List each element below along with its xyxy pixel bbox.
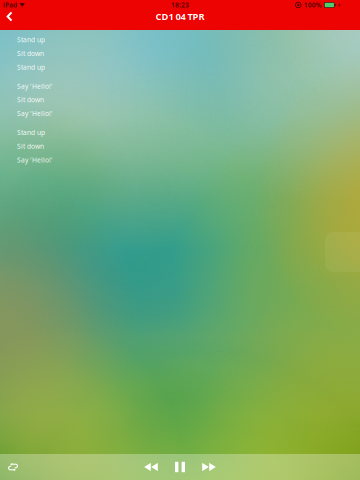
staticText: 100% bbox=[304, 1, 322, 9]
staticText: Say 'Hello!' bbox=[17, 109, 53, 118]
staticText: Sit down bbox=[17, 142, 44, 151]
staticText: Stand up bbox=[17, 35, 45, 44]
staticText: Sit down bbox=[17, 95, 44, 104]
staticText: CD1 04 TPR bbox=[155, 10, 204, 23]
button[interactable]: Pause bbox=[172, 456, 188, 478]
staticText: Say 'Hello!' bbox=[17, 82, 53, 90]
staticText: 18:23 bbox=[171, 1, 189, 9]
staticText: Stand up bbox=[17, 128, 45, 137]
button[interactable]: Back bbox=[0, 5, 21, 27]
button[interactable]: Fast forward bbox=[200, 456, 218, 478]
staticText: Sit down bbox=[17, 49, 44, 58]
staticText: iPad bbox=[3, 1, 17, 9]
button[interactable]: Repeat bbox=[0, 454, 26, 480]
staticText: Say 'Hello!' bbox=[17, 155, 53, 164]
button[interactable]: Rewind bbox=[142, 456, 160, 478]
staticText: Stand up bbox=[17, 63, 45, 71]
